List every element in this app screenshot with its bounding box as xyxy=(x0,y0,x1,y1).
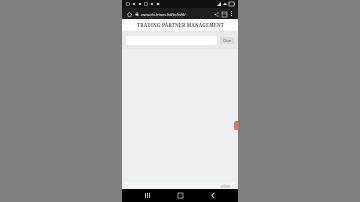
button[interactable]: Home xyxy=(172,189,188,202)
button[interactable]: Recent apps xyxy=(139,189,155,202)
button[interactable]: Clear xyxy=(220,37,234,44)
button[interactable]: Back xyxy=(205,189,221,202)
button[interactable]: More options xyxy=(228,10,235,17)
button[interactable]: www.eic.trison-ltd/tn/in/tl/ xyxy=(135,10,210,18)
staticText: Clear xyxy=(223,38,232,43)
staticText: TRADING PARTNER MANAGEMENT xyxy=(137,22,224,28)
button[interactable]: Share xyxy=(212,10,220,18)
button[interactable]: Side tab xyxy=(234,121,238,130)
button[interactable]: Home xyxy=(125,10,133,18)
button[interactable]: Tabs xyxy=(220,10,228,18)
staticText: www.eic.trison-ltd/tn/in/tl/ xyxy=(141,12,186,17)
staticText: vivo xyxy=(221,183,231,189)
